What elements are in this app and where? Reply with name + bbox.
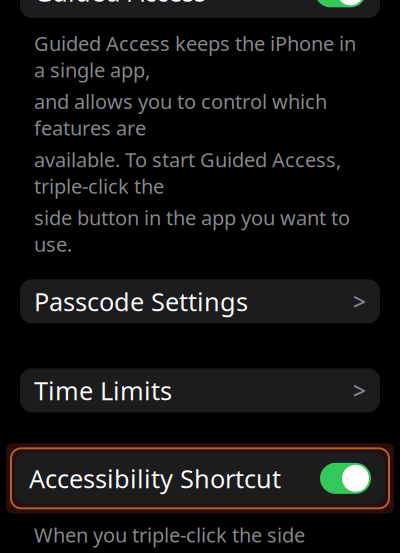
staticText: Guided Access: [34, 0, 206, 9]
staticText: Time Limits: [34, 373, 172, 407]
staticText: >: [353, 375, 366, 405]
button[interactable]: Accessibility Shortcut: [6, 443, 394, 513]
staticText: and allows you to control which features…: [34, 88, 327, 141]
button[interactable]: Passcode Settings: [20, 279, 380, 323]
staticText: side button in the app you want to use.: [34, 204, 350, 257]
button[interactable]: Time Limits: [20, 368, 380, 412]
staticText: Guided Access keeps the iPhone in a sing…: [34, 30, 356, 83]
staticText: >: [353, 286, 366, 316]
staticText: Passcode Settings: [34, 284, 248, 318]
button[interactable]: Guided Access: [20, 0, 380, 18]
staticText: Accessibility Shortcut: [29, 461, 281, 495]
staticText: available. To start Guided Access, tripl…: [34, 146, 341, 199]
staticText: When you triple-click the side button du…: [34, 521, 305, 553]
